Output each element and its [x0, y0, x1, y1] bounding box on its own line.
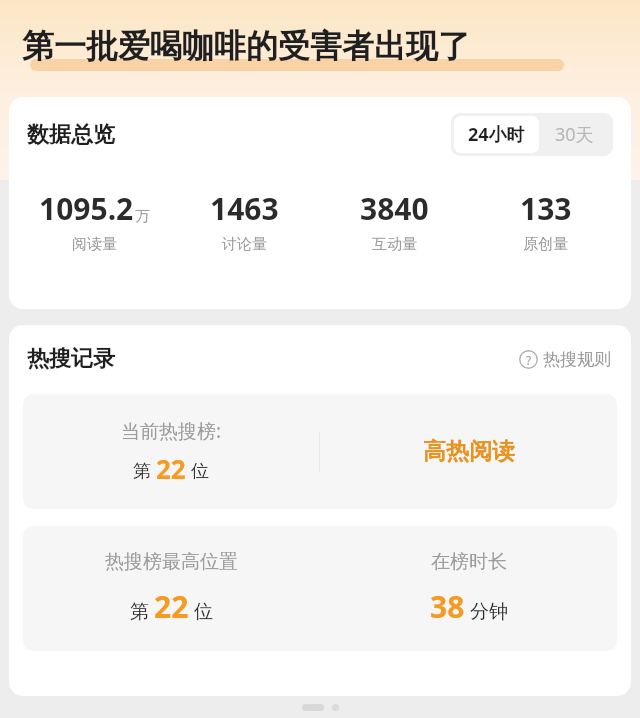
staticText: 位 [194, 600, 213, 624]
staticText: 阅读量 [72, 235, 117, 254]
button[interactable]: 热搜榜最高位置 [23, 526, 617, 651]
staticText: 1463 [210, 188, 279, 229]
button[interactable]: 热搜规则帮助 [517, 347, 613, 372]
staticText: 第 [130, 600, 149, 624]
staticText: 热搜规则 [543, 349, 611, 370]
staticText: 24小时 [468, 122, 525, 147]
staticText: 133 [520, 188, 572, 229]
button[interactable]: 当前热搜榜: [23, 394, 617, 509]
staticText: 热搜记录 [27, 345, 115, 373]
button[interactable]: 24小时 [454, 116, 539, 153]
staticText: 38 [430, 586, 465, 627]
other: 热搜规则帮助 [519, 350, 538, 369]
staticText: 位 [191, 460, 209, 483]
staticText: 第 [133, 460, 151, 483]
button[interactable]: 30天 [539, 116, 610, 153]
staticText: 分钟 [470, 600, 508, 624]
staticText: 当前热搜榜: [121, 418, 222, 444]
staticText: 22 [154, 586, 189, 627]
staticText: 30天 [555, 122, 594, 147]
staticText: 讨论量 [222, 235, 267, 254]
staticText: 在榜时长 [431, 550, 507, 574]
staticText: 1095.2 [39, 188, 134, 229]
staticText: 22 [156, 451, 186, 486]
staticText: 原创量 [523, 235, 568, 254]
staticText: 数据总览 [27, 121, 115, 149]
staticText: 万 [135, 207, 150, 226]
staticText: 热搜榜最高位置 [105, 550, 238, 574]
staticText: ? [526, 352, 532, 368]
staticText: 第一批爱喝咖啡的受害者出现了 [22, 26, 470, 66]
staticText: 高热阅读 [423, 437, 515, 466]
staticText: 互动量 [372, 235, 417, 254]
staticText: 3840 [360, 188, 429, 229]
